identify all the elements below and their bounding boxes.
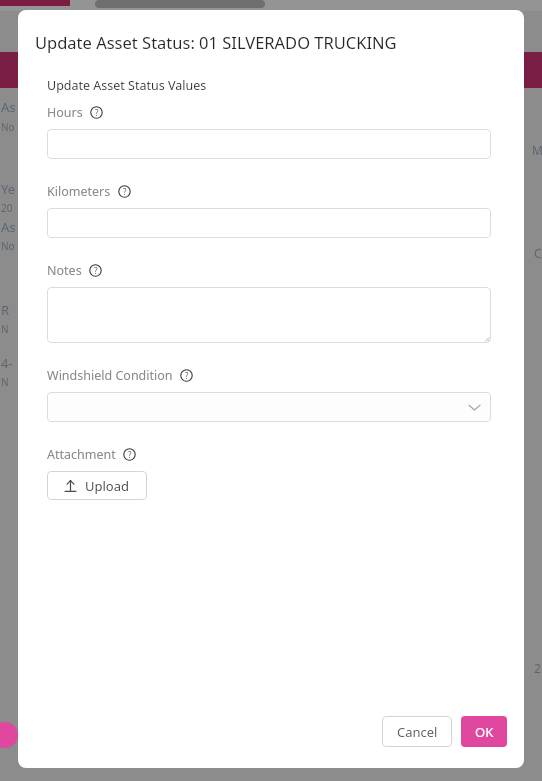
staticText: 20 bbox=[1, 201, 13, 215]
staticText: ? bbox=[94, 265, 98, 276]
staticText: As bbox=[1, 98, 16, 116]
staticText: Cancel bbox=[397, 723, 438, 741]
staticText: Upload bbox=[85, 477, 130, 495]
button[interactable]: Windshield Condition dropdown bbox=[47, 392, 491, 422]
staticText: Ye bbox=[1, 180, 16, 198]
staticText: C bbox=[534, 245, 542, 261]
button[interactable]: Help about Windshield Condition bbox=[180, 369, 193, 382]
staticText: Kilometers bbox=[47, 183, 111, 200]
staticText: Attachment bbox=[47, 446, 116, 463]
button[interactable]: Help about Hours bbox=[90, 106, 103, 119]
button[interactable] bbox=[47, 287, 491, 343]
button[interactable]: Help about Attachment bbox=[123, 448, 136, 461]
button[interactable]: OK bbox=[461, 716, 507, 747]
staticText: M bbox=[532, 142, 542, 158]
staticText: ? bbox=[95, 107, 99, 118]
button[interactable] bbox=[47, 208, 491, 238]
staticText: ? bbox=[123, 186, 127, 197]
staticText: No bbox=[1, 120, 15, 134]
staticText: 2 bbox=[534, 660, 541, 676]
button[interactable]: Help about Kilometers bbox=[118, 185, 131, 198]
staticText: No bbox=[1, 239, 15, 253]
staticText: Windshield Condition bbox=[47, 367, 173, 384]
staticText: Update Asset Status Values bbox=[47, 77, 207, 94]
button[interactable]: Upload bbox=[47, 471, 147, 500]
staticText: ? bbox=[185, 370, 189, 381]
staticText: OK bbox=[475, 723, 494, 741]
staticText: N bbox=[1, 375, 9, 389]
staticText: ? bbox=[128, 449, 132, 460]
staticText: R bbox=[1, 301, 10, 319]
button[interactable]: Help about Notes bbox=[89, 264, 102, 277]
staticText: Update Asset Status: 01 SILVERADO TRUCKI… bbox=[35, 31, 397, 53]
staticText: 4- bbox=[1, 354, 13, 372]
staticText: Hours bbox=[47, 104, 83, 121]
staticText: N bbox=[1, 322, 9, 336]
staticText: As bbox=[1, 218, 16, 236]
button[interactable]: Cancel bbox=[382, 716, 452, 747]
staticText: Notes bbox=[47, 262, 82, 279]
button[interactable] bbox=[47, 129, 491, 159]
